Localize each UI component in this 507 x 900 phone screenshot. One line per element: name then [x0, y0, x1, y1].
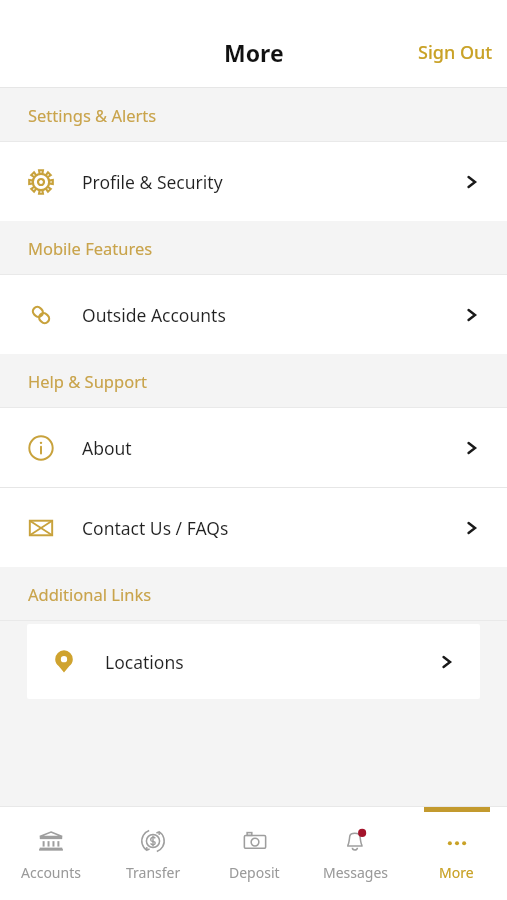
button[interactable]: Profile & Security	[0, 142, 507, 221]
staticText: Locations	[105, 650, 436, 674]
button[interactable]: More	[406, 807, 507, 900]
button[interactable]: Accounts	[0, 807, 102, 900]
staticText: Outside Accounts	[82, 303, 461, 327]
staticText: About	[82, 436, 461, 460]
button[interactable]: Deposit	[204, 807, 305, 900]
staticText: More	[439, 863, 474, 882]
staticText: Mobile Features	[28, 237, 153, 259]
staticText: Transfer	[126, 863, 181, 882]
staticText: Profile & Security	[82, 170, 461, 194]
button[interactable]: Contact Us / FAQs	[0, 488, 507, 567]
staticText: Settings & Alerts	[28, 104, 157, 126]
button[interactable]: Locations	[27, 624, 480, 699]
staticText: Help & Support	[28, 370, 147, 392]
staticText: Additional Links	[28, 583, 152, 605]
staticText: Sign Out	[418, 40, 493, 65]
staticText: Messages	[323, 863, 389, 882]
button[interactable]: Outside Accounts	[0, 275, 507, 354]
staticText: Contact Us / FAQs	[82, 516, 461, 540]
button[interactable]: About	[0, 408, 507, 487]
staticText: More	[224, 37, 284, 68]
button[interactable]: Transfer	[102, 807, 204, 900]
button[interactable]: Messages	[305, 807, 406, 900]
button[interactable]: Sign Out	[404, 32, 507, 73]
staticText: Deposit	[229, 863, 280, 882]
staticText: Accounts	[21, 863, 81, 882]
